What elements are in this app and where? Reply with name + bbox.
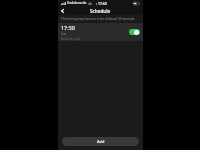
staticText: Add [97,139,105,144]
staticText: 17:50 [98,1,107,6]
button[interactable]: Add [62,137,139,146]
staticText: Sun [61,32,67,36]
staticText: 17:50 [61,24,75,31]
staticText: Schedule [90,8,111,14]
button[interactable]: 17:50 [58,23,143,41]
staticText: Vodafone.de [67,1,87,5]
button[interactable]: Toggle schedule [129,29,140,35]
staticText: The timing may have an error of about 30… [61,17,135,21]
button[interactable]: Back [58,6,67,15]
staticText: Bedroom Light [61,37,81,41]
